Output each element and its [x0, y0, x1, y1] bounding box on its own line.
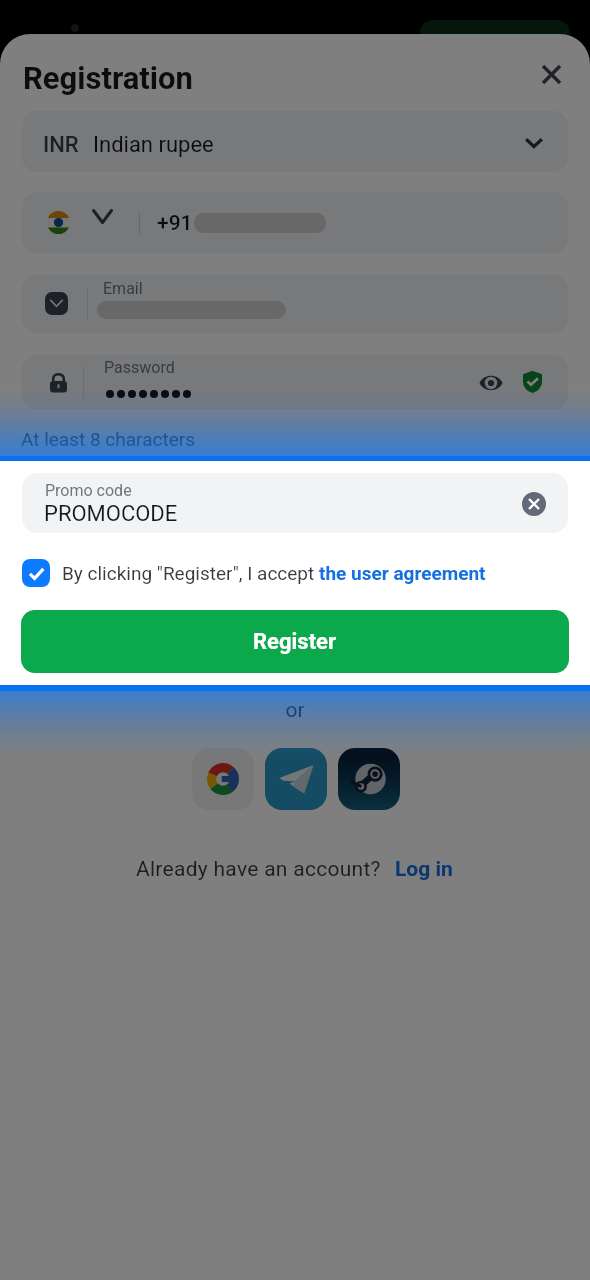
- button[interactable]: Close: [529, 52, 574, 97]
- button[interactable]: Sign in with Steam: [338, 748, 400, 810]
- staticText: At least 8 characters: [21, 428, 195, 450]
- staticText: +91: [157, 211, 193, 236]
- button[interactable]: Show password: [472, 364, 510, 402]
- staticText: Promo code: [45, 481, 132, 500]
- button[interactable]: INR: [22, 111, 568, 172]
- staticText: PROMOCODE: [44, 501, 178, 527]
- staticText: Email: [103, 279, 143, 298]
- button[interactable]: Sign in with Google: [192, 748, 254, 810]
- button[interactable]: Promo code: [22, 473, 568, 533]
- staticText: Registration: [23, 60, 193, 96]
- staticText: Already have an account?: [136, 857, 381, 882]
- staticText: By clicking "Register", I accept: [62, 562, 319, 584]
- staticText: Log in: [395, 857, 453, 882]
- button[interactable]: Log in: [395, 857, 453, 882]
- staticText: the user agreement: [319, 562, 486, 584]
- button[interactable]: By clicking "Register", I accept: [22, 555, 486, 591]
- staticText: Indian rupee: [93, 132, 214, 158]
- button[interactable]: +91: [22, 192, 568, 254]
- staticText: Password: [104, 358, 175, 377]
- staticText: Register: [253, 629, 337, 655]
- button[interactable]: Email: [22, 274, 568, 333]
- button[interactable]: Sign in with Telegram: [265, 748, 327, 810]
- button[interactable]: Password: [22, 355, 568, 410]
- button[interactable]: Clear promo code: [522, 492, 546, 516]
- staticText: INR: [43, 132, 79, 158]
- button[interactable]: Register: [21, 610, 569, 673]
- staticText: or: [0, 698, 590, 723]
